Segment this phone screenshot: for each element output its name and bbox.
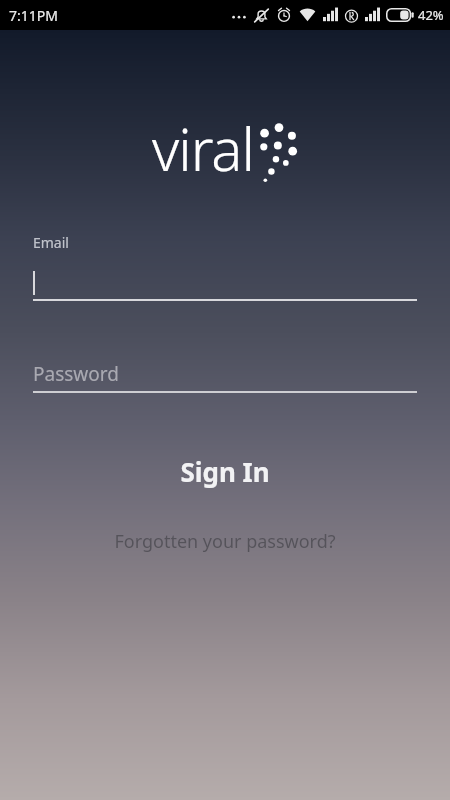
staticText: Sign In bbox=[180, 454, 270, 489]
staticText: viral bbox=[152, 109, 254, 188]
staticText: Email bbox=[33, 233, 69, 252]
button[interactable]: Forgotten your password? bbox=[33, 521, 417, 561]
staticText: Password bbox=[33, 361, 119, 387]
staticText: 7:11PM bbox=[9, 6, 58, 25]
button[interactable]: Password bbox=[33, 359, 417, 393]
button[interactable]: Email bbox=[33, 233, 417, 301]
staticText: 42% bbox=[418, 6, 444, 24]
button[interactable]: Sign In bbox=[33, 445, 417, 497]
staticText: Forgotten your password? bbox=[114, 529, 336, 554]
